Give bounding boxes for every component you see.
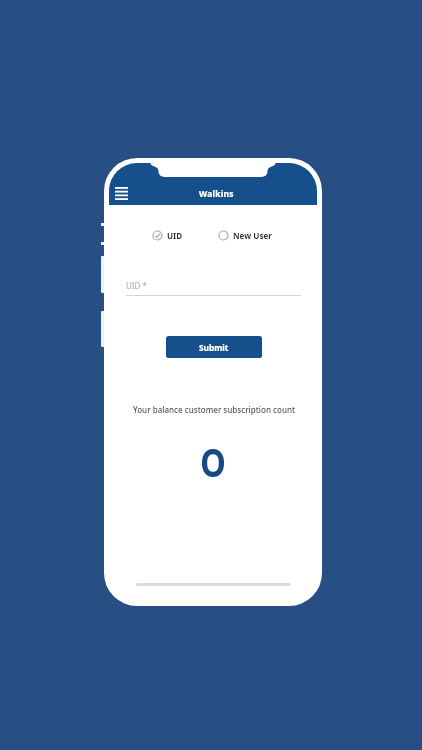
- staticText: Submit: [199, 342, 229, 353]
- button[interactable]: Open navigation menu: [109, 180, 133, 206]
- button[interactable]: UID *: [126, 280, 301, 296]
- button[interactable]: UID: [152, 230, 183, 241]
- staticText: UID *: [126, 280, 147, 291]
- staticText: New User: [233, 230, 272, 241]
- button[interactable]: Submit: [166, 336, 262, 358]
- staticText: Your balance customer subscription count: [110, 404, 317, 415]
- button[interactable]: New User: [218, 230, 272, 241]
- staticText: UID: [167, 230, 183, 241]
- staticText: Walkins: [199, 188, 234, 200]
